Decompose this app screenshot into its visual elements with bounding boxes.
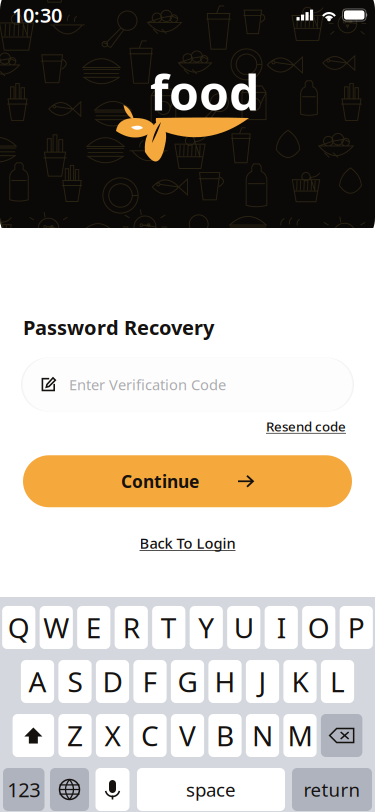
button[interactable]: Back To Login xyxy=(23,507,352,553)
button[interactable]: return xyxy=(292,768,372,811)
staticText: H xyxy=(214,663,235,700)
staticText: F xyxy=(142,663,157,700)
button[interactable]: L xyxy=(321,660,354,703)
button[interactable]: C xyxy=(133,714,167,757)
button[interactable]: V xyxy=(171,714,204,757)
button[interactable]: A xyxy=(21,660,54,703)
staticText: G xyxy=(177,663,197,700)
staticText: 123 xyxy=(7,776,40,803)
staticText: Password Recovery xyxy=(23,314,214,341)
button[interactable]: T xyxy=(152,606,185,649)
button[interactable]: Switch keyboard xyxy=(50,768,89,811)
button[interactable]: D xyxy=(96,660,129,703)
staticText: Enter Verification Code xyxy=(69,375,226,394)
button[interactable]: M xyxy=(283,714,317,757)
staticText: space xyxy=(186,777,236,802)
staticText: W xyxy=(43,609,69,646)
staticText: R xyxy=(123,609,140,646)
button[interactable]: J xyxy=(246,660,279,703)
staticText: L xyxy=(330,663,345,700)
staticText: return xyxy=(303,777,360,802)
button[interactable]: Delete xyxy=(321,714,362,757)
staticText: A xyxy=(28,663,46,700)
button[interactable]: N xyxy=(246,714,279,757)
staticText: Back To Login xyxy=(139,533,235,553)
button[interactable]: Continue xyxy=(23,455,352,507)
button[interactable]: space xyxy=(137,768,285,811)
staticText: 10:30 xyxy=(12,2,62,28)
staticText: Q xyxy=(8,609,30,646)
staticText: J xyxy=(258,663,266,700)
staticText: Resend code xyxy=(266,418,346,435)
staticText: O xyxy=(308,609,330,646)
staticText: C xyxy=(141,717,159,754)
staticText: N xyxy=(252,717,273,754)
button[interactable]: Z xyxy=(58,714,92,757)
button[interactable]: R xyxy=(115,606,148,649)
button[interactable]: X xyxy=(96,714,129,757)
staticText: S xyxy=(67,663,82,700)
button[interactable]: I xyxy=(265,606,298,649)
staticText: K xyxy=(291,663,308,700)
staticText: D xyxy=(102,663,122,700)
staticText: X xyxy=(104,717,120,754)
button[interactable]: Shift xyxy=(13,714,54,757)
button[interactable]: S xyxy=(58,660,92,703)
staticText: B xyxy=(216,717,234,754)
staticText: U xyxy=(234,609,254,646)
button[interactable]: W xyxy=(40,606,73,649)
button[interactable]: Q xyxy=(2,606,35,649)
staticText: Y xyxy=(198,609,214,646)
button[interactable]: O xyxy=(302,606,335,649)
staticText: E xyxy=(86,609,102,646)
button[interactable]: H xyxy=(208,660,242,703)
staticText: Continue xyxy=(121,470,199,493)
button[interactable]: P xyxy=(340,606,373,649)
staticText: food xyxy=(150,60,259,124)
button[interactable]: U xyxy=(227,606,260,649)
staticText: T xyxy=(161,609,177,646)
staticText: P xyxy=(348,609,365,646)
button[interactable]: E xyxy=(77,606,110,649)
button[interactable]: Dictate xyxy=(95,768,129,811)
button[interactable]: Y xyxy=(190,606,223,649)
button[interactable]: K xyxy=(283,660,317,703)
button[interactable]: Resend code xyxy=(23,411,352,435)
staticText: I xyxy=(277,609,286,646)
staticText: M xyxy=(287,717,312,754)
staticText: V xyxy=(179,717,196,754)
button[interactable]: B xyxy=(208,714,242,757)
button[interactable]: 123 xyxy=(3,768,44,811)
button[interactable]: F xyxy=(133,660,167,703)
staticText: Z xyxy=(67,717,83,754)
button[interactable]: G xyxy=(171,660,204,703)
